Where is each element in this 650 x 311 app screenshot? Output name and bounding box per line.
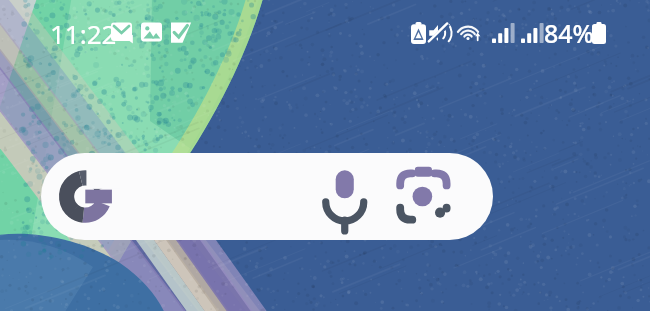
button[interactable]: Voice search bbox=[41, 153, 493, 240]
button[interactable]: Google Lens bbox=[396, 153, 468, 240]
button[interactable]: Voice search bbox=[319, 153, 391, 240]
